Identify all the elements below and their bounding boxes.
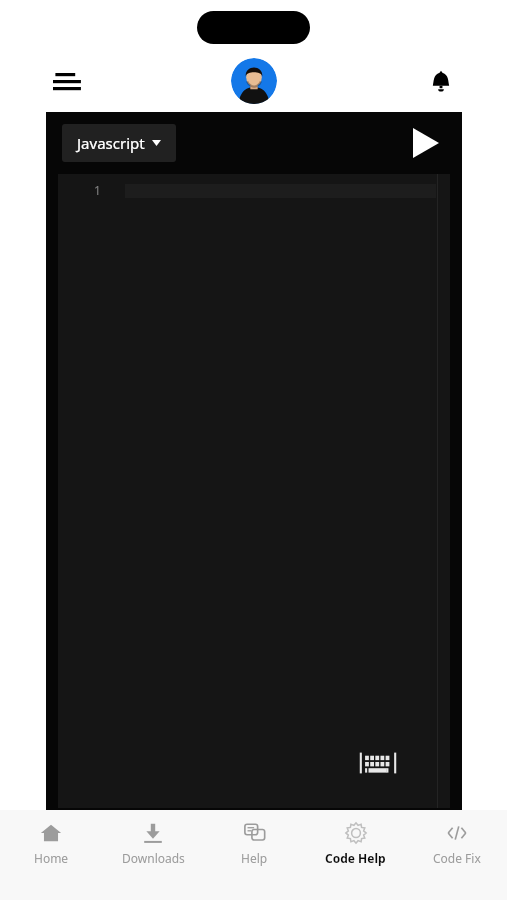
button[interactable] (60, 860, 448, 900)
staticText: Code Fix (433, 850, 481, 866)
button[interactable]: Javascript (62, 124, 176, 162)
staticText: Home (34, 850, 69, 866)
button[interactable]: Generate (331, 817, 446, 852)
staticText: Downloads (122, 850, 185, 866)
button[interactable]: Downloads (102, 820, 204, 900)
button[interactable]: 1 (58, 174, 450, 808)
staticText: Javascript (77, 133, 145, 153)
button[interactable]: Run (406, 123, 446, 163)
button[interactable]: Menu (46, 59, 90, 103)
button[interactable]: Code Fix (406, 820, 507, 900)
button[interactable]: Home (0, 820, 102, 900)
button[interactable]: Keyboard (356, 746, 400, 780)
button[interactable]: Code Help (305, 820, 406, 900)
staticText: 1 (94, 182, 101, 198)
button[interactable]: Help (204, 820, 305, 900)
staticText: Code Help (325, 850, 386, 866)
staticText: Help (241, 850, 268, 866)
button[interactable]: Notifications (419, 59, 463, 103)
button[interactable]: Profile (231, 58, 277, 104)
